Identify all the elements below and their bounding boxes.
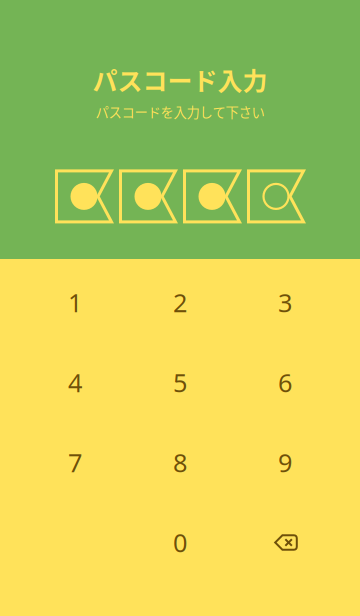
button[interactable]: 5: [127, 342, 232, 422]
button[interactable]: 8: [127, 422, 232, 502]
staticText: 0: [173, 526, 187, 559]
button[interactable]: 7: [22, 422, 127, 502]
button[interactable]: 2: [127, 262, 232, 342]
button[interactable]: 4: [22, 342, 127, 422]
staticText: パスコードを入力して下さい: [95, 102, 264, 121]
staticText: 6: [278, 366, 292, 399]
button[interactable]: 9: [232, 422, 337, 502]
staticText: 7: [68, 446, 82, 479]
button[interactable]: 1: [22, 262, 127, 342]
staticText: 4: [68, 366, 82, 399]
staticText: パスコード入力: [92, 61, 267, 98]
staticText: 1: [68, 286, 82, 319]
staticText: 9: [278, 446, 292, 479]
staticText: 3: [278, 286, 292, 319]
button[interactable]: Delete: [232, 502, 337, 582]
staticText: 8: [173, 446, 187, 479]
staticText: 5: [173, 366, 187, 399]
button[interactable]: 0: [127, 502, 232, 582]
button[interactable]: 3: [232, 262, 337, 342]
button[interactable]: 6: [232, 342, 337, 422]
staticText: 2: [173, 286, 187, 319]
